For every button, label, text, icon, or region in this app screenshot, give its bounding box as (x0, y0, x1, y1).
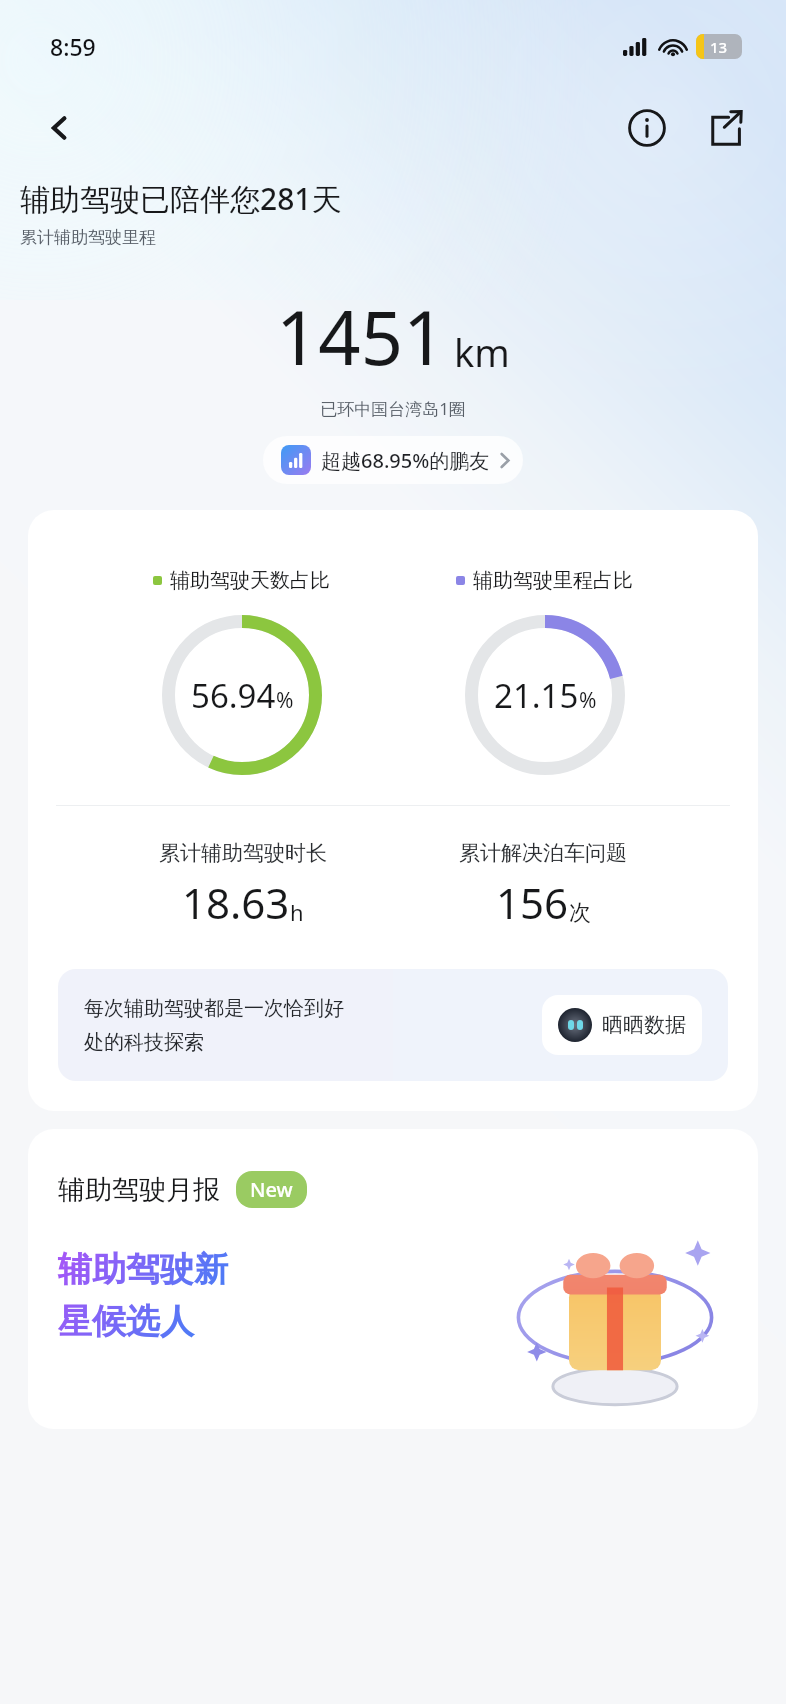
staticText: 辅助驾驶天数占比 (170, 568, 330, 593)
button[interactable]: Back (34, 102, 86, 154)
button[interactable]: Share (698, 101, 752, 155)
staticText: New (250, 1176, 293, 1203)
staticText: h (290, 897, 304, 927)
button[interactable]: 晒晒数据 (542, 995, 702, 1055)
staticText: 超越68.95%的鹏友 (321, 447, 490, 474)
staticText: 次 (569, 899, 591, 927)
staticText: 每次辅助驾驶都是一次恰到好 处的科技探索 (84, 996, 542, 1055)
staticText: 156 (496, 874, 569, 931)
staticText: 累计辅助驾驶时长 (159, 840, 327, 866)
staticText: 累计解决泊车问题 (459, 840, 627, 866)
staticText: % (579, 686, 597, 715)
staticText: 辅助驾驶新 星候选人 (58, 1248, 228, 1343)
staticText: % (276, 686, 294, 715)
staticText: 辅助驾驶月报 (58, 1173, 220, 1207)
button[interactable]: Info (620, 101, 674, 155)
staticText: 8:59 (50, 31, 96, 62)
button[interactable]: 辅助驾驶月报 (28, 1129, 758, 1429)
button[interactable]: 超越68.95%的鹏友 (263, 436, 523, 484)
staticText: 56.94 (191, 673, 276, 718)
staticText: 13 (710, 37, 728, 57)
staticText: 累计辅助驾驶里程 (20, 227, 156, 248)
staticText: 21.15 (494, 673, 579, 718)
staticText: 晒晒数据 (602, 1012, 686, 1038)
staticText: 辅助驾驶里程占比 (473, 568, 633, 593)
staticText: 18.63 (182, 874, 290, 931)
staticText: km (454, 326, 510, 378)
staticText: 1451 (276, 286, 446, 387)
staticText: 已环中国台湾岛1圈 (0, 397, 786, 420)
staticText: 辅助驾驶已陪伴您281天 (20, 178, 342, 219)
